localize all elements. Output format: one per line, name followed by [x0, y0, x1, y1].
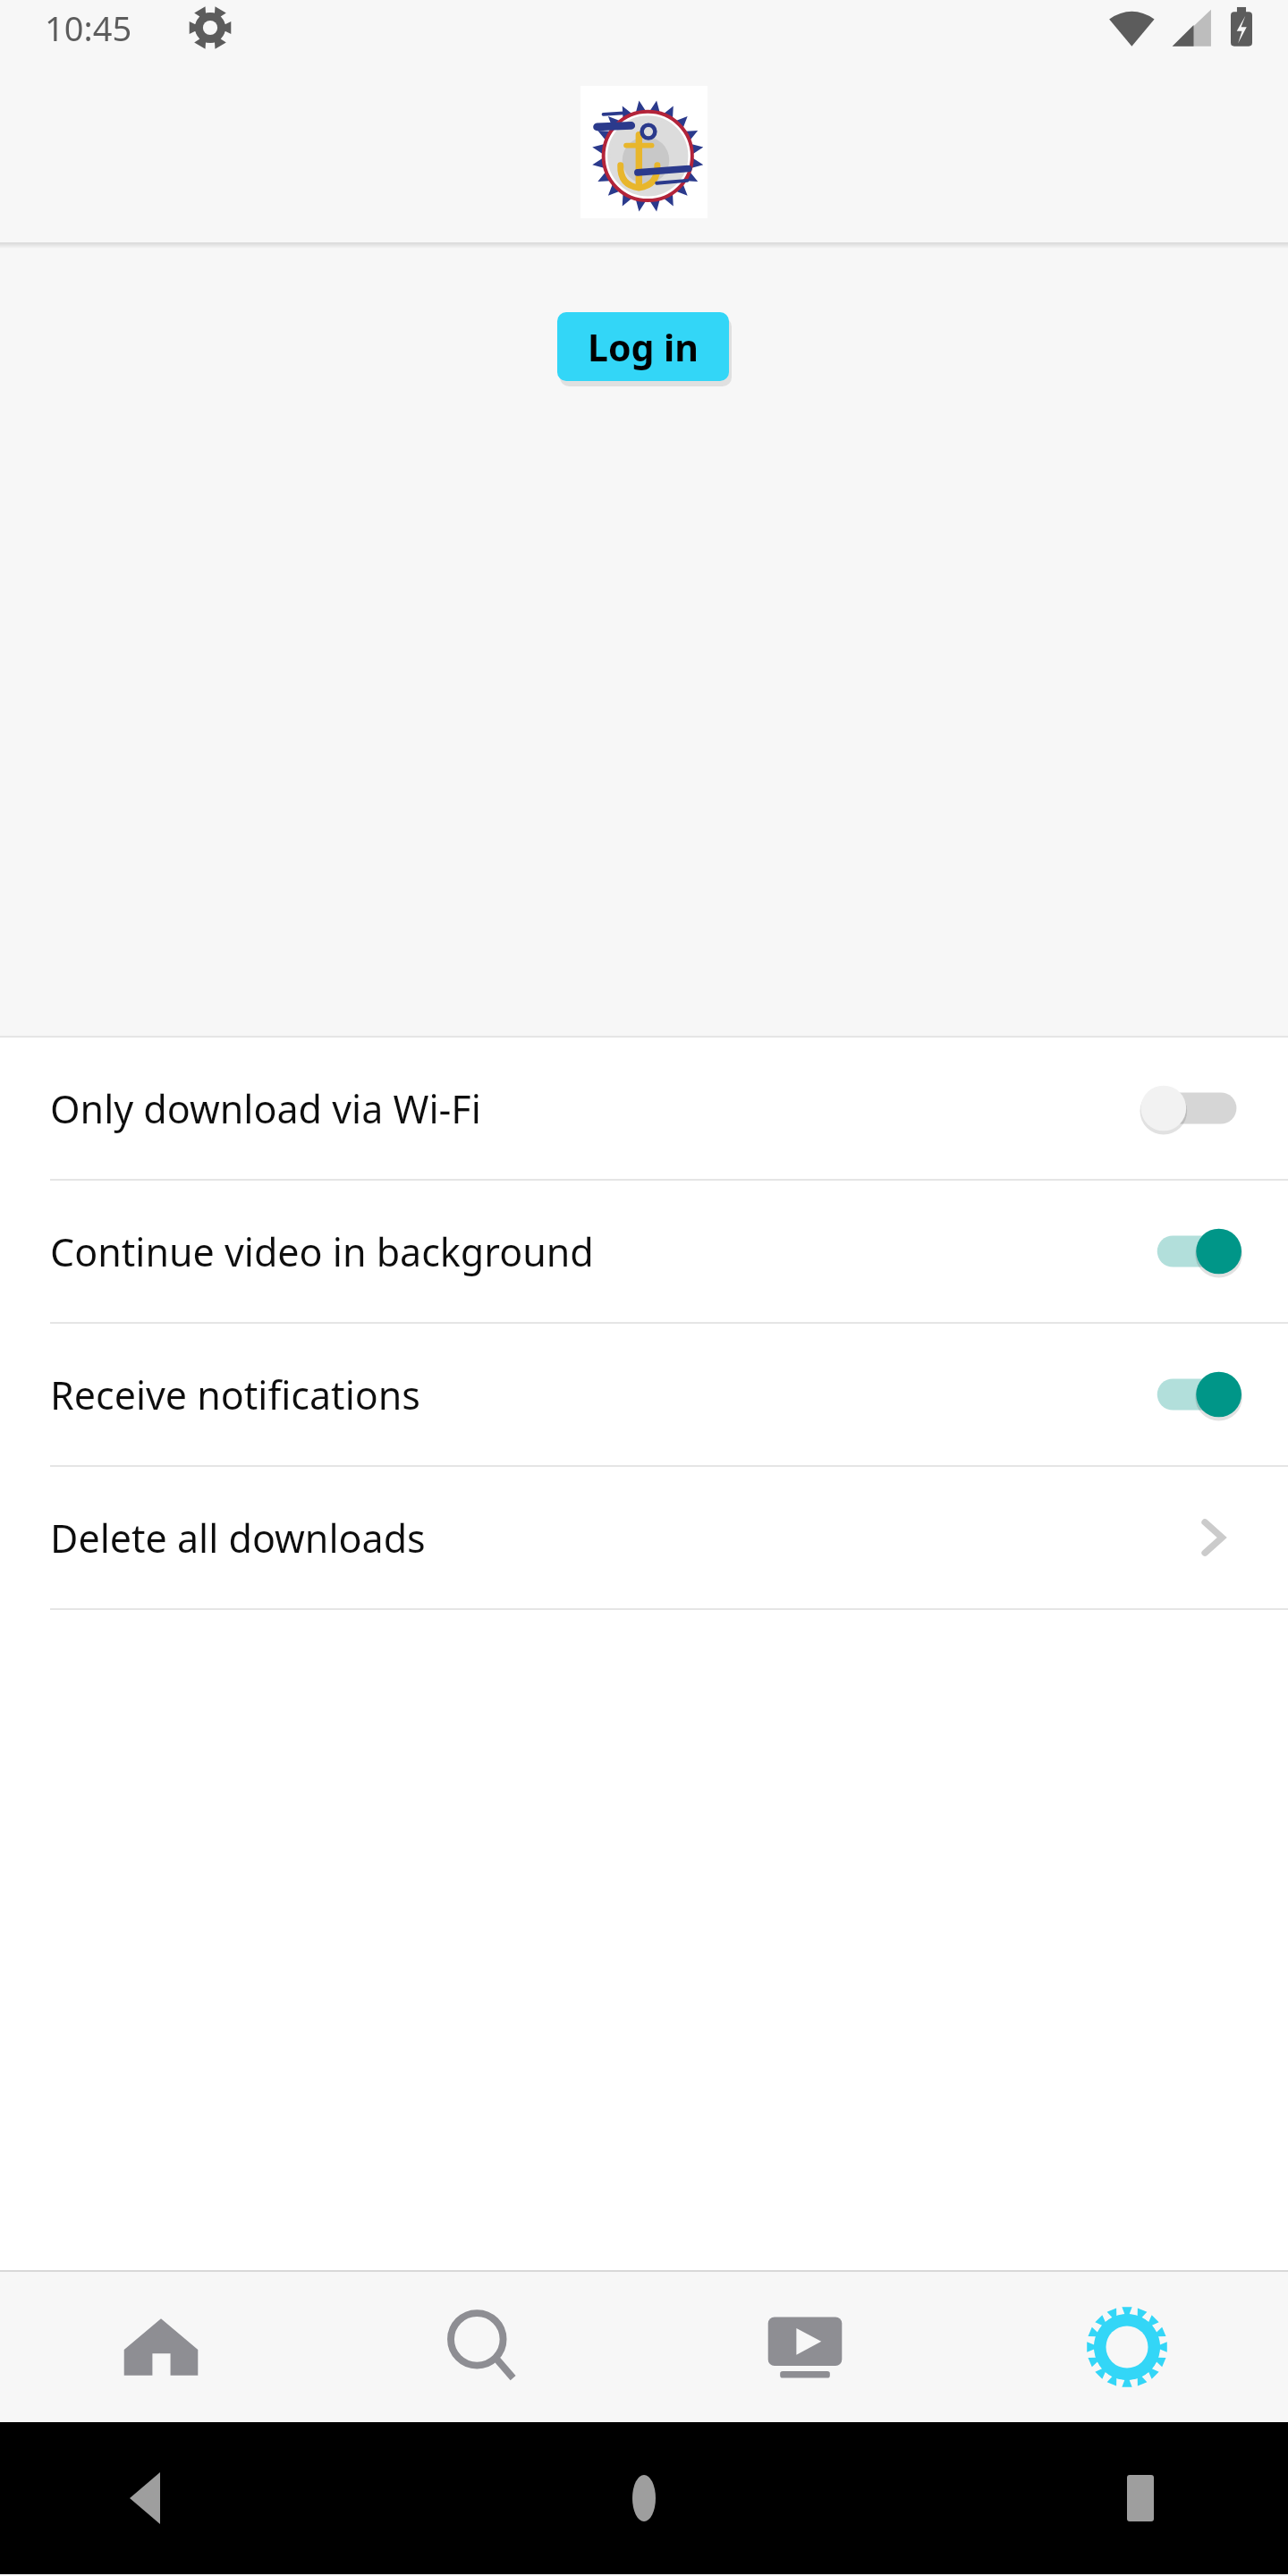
button[interactable]: Home	[595, 2449, 693, 2547]
button[interactable]: Settings	[966, 2272, 1288, 2422]
button[interactable]: Log in	[557, 312, 729, 381]
button[interactable]: Delete all downloads	[0, 1467, 1288, 1608]
button[interactable]: Home	[0, 2272, 322, 2422]
staticText: Only download via Wi-Fi	[50, 1082, 1141, 1135]
staticText: Continue video in background	[50, 1225, 1141, 1278]
staticText: Log in	[588, 322, 699, 372]
staticText: 10:45	[45, 4, 132, 51]
button[interactable]: Only download via Wi-Fi	[0, 1038, 1288, 1179]
button[interactable]: Videos	[644, 2272, 966, 2422]
button[interactable]: Recents	[1091, 2449, 1190, 2547]
button[interactable]: Lazy Geck Sailing	[580, 86, 708, 218]
staticText: Delete all downloads	[50, 1512, 1184, 1564]
button[interactable]: Search	[322, 2272, 644, 2422]
button[interactable]: Continue video in background	[0, 1181, 1288, 1322]
button[interactable]: Back	[98, 2449, 197, 2547]
staticText: Receive notifications	[50, 1368, 1141, 1421]
button[interactable]: Receive notifications	[0, 1324, 1288, 1465]
